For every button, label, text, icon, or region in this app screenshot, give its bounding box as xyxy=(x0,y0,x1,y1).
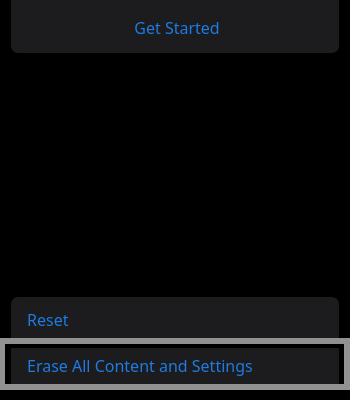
button[interactable]: Get Started xyxy=(11,10,339,53)
staticText: Erase All Content and Settings xyxy=(27,355,253,377)
button[interactable]: Erase All Content and Settings xyxy=(11,348,339,384)
button[interactable]: Reset xyxy=(11,297,339,341)
staticText: Get Started xyxy=(134,17,220,39)
staticText: Reset xyxy=(27,309,69,331)
